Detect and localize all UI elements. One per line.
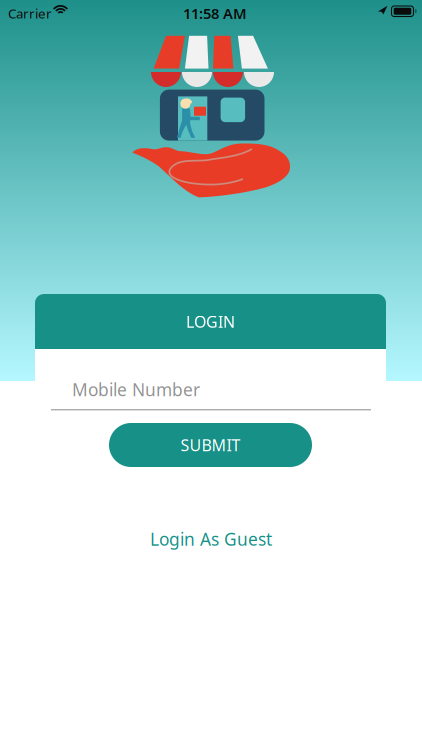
staticText: Login As Guest xyxy=(150,527,272,550)
staticText: LOGIN xyxy=(186,311,235,332)
button[interactable]: SUBMIT xyxy=(109,423,312,467)
button[interactable]: Login As Guest xyxy=(121,524,301,554)
staticText: SUBMIT xyxy=(180,434,240,456)
staticText: Mobile Number xyxy=(72,378,200,401)
staticText: Carrier xyxy=(8,4,52,22)
staticText: 11:58 AM xyxy=(183,3,247,23)
